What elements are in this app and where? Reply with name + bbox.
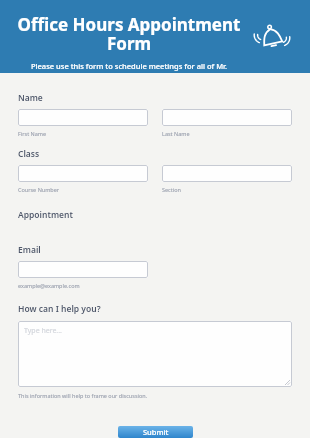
button[interactable]	[18, 165, 148, 182]
staticText: Section	[162, 186, 181, 193]
staticText: First Name	[18, 130, 47, 137]
staticText: Submit	[143, 427, 169, 437]
button[interactable]	[162, 109, 292, 126]
staticText: Type here...	[24, 326, 62, 336]
button[interactable]: Submit	[118, 426, 193, 438]
staticText: Appointment	[18, 209, 73, 221]
staticText: Name	[18, 92, 43, 104]
staticText: Office Hours Appointment Form	[14, 13, 244, 55]
staticText: This information will help to frame our …	[18, 392, 148, 399]
staticText: Class	[18, 148, 40, 160]
button[interactable]	[18, 109, 148, 126]
button[interactable]	[162, 165, 292, 182]
staticText: Email	[18, 244, 41, 256]
button[interactable]: Type here...	[18, 321, 292, 387]
staticText: Last Name	[162, 130, 190, 137]
staticText: Please use this form to schedule meeting…	[14, 61, 244, 73]
button[interactable]	[18, 261, 148, 278]
staticText: Course Number	[18, 186, 60, 193]
other: Notifications	[252, 17, 292, 57]
staticText: How can I help you?	[18, 303, 101, 315]
staticText: example@example.com	[18, 282, 80, 289]
